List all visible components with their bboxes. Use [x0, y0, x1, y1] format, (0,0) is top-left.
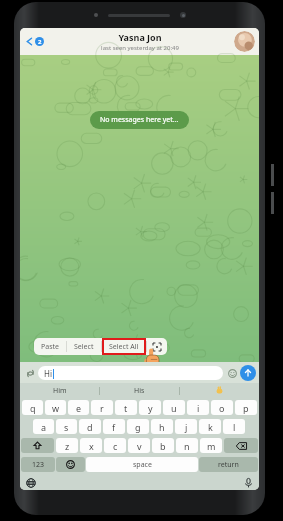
button[interactable]: Voice input: [242, 476, 255, 489]
button[interactable]: No messages here yet...: [90, 111, 189, 129]
button[interactable]: k: [199, 419, 221, 434]
button[interactable]: o: [211, 400, 233, 415]
button[interactable]: Backspace: [224, 438, 258, 453]
staticText: i: [197, 402, 200, 414]
staticText: His: [134, 386, 145, 396]
staticText: k: [208, 421, 213, 433]
staticText: return: [218, 460, 239, 470]
button[interactable]: d: [79, 419, 101, 434]
button[interactable]: Select: [67, 338, 101, 355]
button[interactable]: f: [103, 419, 125, 434]
staticText: m: [207, 440, 216, 452]
button[interactable]: y: [139, 400, 161, 415]
staticText: Hi: [44, 368, 52, 379]
button[interactable]: Send: [240, 365, 256, 381]
staticText: 123: [32, 460, 45, 470]
button[interactable]: h: [151, 419, 173, 434]
button[interactable]: q: [22, 400, 43, 415]
button[interactable]: His: [100, 383, 179, 398]
button[interactable]: t: [115, 400, 137, 415]
button[interactable]: z: [56, 438, 78, 453]
button[interactable]: [180, 383, 259, 398]
staticText: Select: [74, 342, 94, 352]
button[interactable]: i: [187, 400, 209, 415]
staticText: Him: [53, 386, 67, 396]
staticText: b: [160, 440, 166, 452]
staticText: q: [30, 402, 36, 414]
staticText: f: [112, 421, 116, 433]
button[interactable]: c: [104, 438, 126, 453]
button[interactable]: Back: [25, 37, 44, 46]
button[interactable]: Paste: [34, 338, 66, 355]
button[interactable]: 123: [21, 457, 55, 472]
button[interactable]: a: [33, 419, 54, 434]
staticText: x: [89, 440, 94, 452]
staticText: space: [133, 460, 152, 470]
button[interactable]: Profile photo: [234, 31, 255, 52]
staticText: s: [64, 421, 69, 433]
button[interactable]: l: [223, 419, 245, 434]
staticText: u: [171, 402, 177, 414]
button[interactable]: m: [200, 438, 222, 453]
button[interactable]: Emoji keyboard: [56, 457, 85, 472]
button[interactable]: w: [45, 400, 66, 415]
button[interactable]: u: [163, 400, 185, 415]
button[interactable]: s: [56, 419, 77, 434]
button[interactable]: e: [68, 400, 89, 415]
staticText: 2: [38, 38, 42, 46]
button[interactable]: Change language: [24, 476, 37, 489]
staticText: Select All: [109, 342, 139, 352]
staticText: o: [219, 402, 225, 414]
button[interactable]: b: [152, 438, 174, 453]
staticText: y: [148, 402, 153, 414]
staticText: n: [184, 440, 190, 452]
staticText: l: [233, 421, 236, 433]
staticText: Paste: [41, 342, 59, 352]
button[interactable]: x: [80, 438, 102, 453]
staticText: p: [243, 402, 249, 414]
staticText: c: [113, 440, 118, 452]
button[interactable]: Emoji: [225, 366, 239, 380]
staticText: last seen yesterday at 20:49: [101, 44, 179, 52]
staticText: h: [159, 421, 165, 433]
button[interactable]: j: [175, 419, 197, 434]
staticText: r: [100, 402, 104, 414]
staticText: No messages here yet...: [100, 115, 179, 125]
button[interactable]: n: [176, 438, 198, 453]
button[interactable]: Hi: [38, 366, 223, 380]
staticText: v: [137, 440, 142, 452]
staticText: Yasna Jon: [118, 31, 162, 43]
staticText: e: [76, 402, 82, 414]
button[interactable]: v: [128, 438, 150, 453]
staticText: g: [135, 421, 141, 433]
button[interactable]: p: [235, 400, 257, 415]
button[interactable]: Shift: [21, 438, 54, 453]
staticText: z: [65, 440, 70, 452]
button[interactable]: Him: [20, 383, 99, 398]
button[interactable]: Attach: [23, 366, 38, 381]
button[interactable]: return: [199, 457, 258, 472]
button[interactable]: Select All: [102, 338, 146, 355]
staticText: t: [124, 402, 128, 414]
button[interactable]: Select region: [147, 338, 167, 355]
staticText: a: [41, 421, 47, 433]
staticText: w: [52, 402, 60, 414]
button[interactable]: r: [91, 400, 113, 415]
staticText: d: [87, 421, 93, 433]
button[interactable]: g: [127, 419, 149, 434]
button[interactable]: space: [86, 457, 198, 472]
staticText: j: [185, 421, 188, 433]
